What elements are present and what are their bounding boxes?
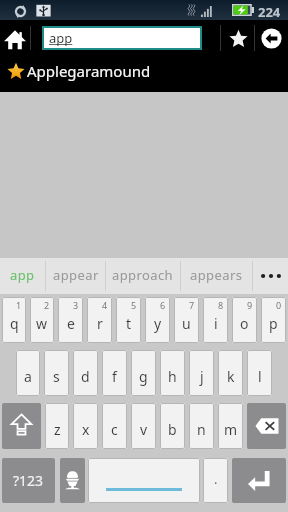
staticText: m [224,420,238,439]
staticText: 7 [189,299,195,311]
button[interactable]: 0 [261,297,286,343]
button[interactable]: s [44,350,69,396]
button[interactable]: More suggestions [253,258,288,294]
staticText: e [67,314,75,333]
button[interactable]: Bookmarks [222,20,254,56]
staticText: app [10,266,35,284]
staticText: x [82,420,90,439]
button[interactable]: Space [88,458,200,503]
staticText: l [258,367,262,386]
button[interactable]: Applegaramound [0,56,288,92]
button[interactable]: Home [0,20,30,56]
button[interactable]: l [247,350,272,396]
staticText: 224 [258,3,281,21]
button[interactable]: 5 [116,297,141,343]
button[interactable]: appears [181,258,252,294]
button[interactable]: d [73,350,98,396]
staticText: u [182,314,191,333]
button[interactable]: app [42,26,202,50]
staticText: c [111,420,118,439]
button[interactable]: g [131,350,156,396]
staticText: 4 [102,299,108,311]
staticText: p [269,314,278,333]
button[interactable]: 3 [58,297,83,343]
staticText: s [53,367,60,386]
staticText: 1 [16,299,22,311]
staticText: r [97,314,103,333]
button[interactable]: 9 [232,297,257,343]
staticText: y [154,314,162,333]
staticText: 9 [247,299,253,311]
staticText: Applegaramound [27,61,151,81]
staticText: appear [53,266,99,284]
button[interactable]: approach [106,258,180,294]
staticText: j [200,367,204,386]
button[interactable]: . [203,458,228,503]
staticText: n [197,420,206,439]
button[interactable]: Delete [247,403,286,449]
staticText: 6 [160,299,166,311]
staticText: w [36,314,48,333]
staticText: t [126,314,132,333]
staticText: h [168,367,177,386]
staticText: ?123 [13,471,44,490]
staticText: a [24,367,32,386]
staticText: b [168,420,177,439]
staticText: 5 [131,299,137,311]
staticText: i [214,314,218,333]
staticText: q [10,314,19,333]
button[interactable]: ?123 [2,458,55,503]
button[interactable]: appear [46,258,105,294]
button[interactable]: Voice input [60,458,85,503]
staticText: f [112,367,117,386]
button[interactable]: j [189,350,214,396]
button[interactable]: 8 [203,297,228,343]
staticText: g [139,367,148,386]
staticText: 0 [276,299,282,311]
button[interactable]: 6 [145,297,170,343]
staticText: k [227,367,235,386]
button[interactable]: 4 [87,297,112,343]
staticText: . [214,470,218,488]
button[interactable]: m [218,403,243,449]
staticText: v [140,420,148,439]
button[interactable]: z [45,403,69,449]
button[interactable]: Back [256,20,287,56]
button[interactable]: Enter [232,458,286,503]
staticText: approach [112,266,174,284]
staticText: d [81,367,90,386]
button[interactable]: c [102,403,127,449]
button[interactable]: k [218,350,243,396]
button[interactable]: 1 [2,297,26,343]
button[interactable]: v [131,403,156,449]
button[interactable]: h [160,350,185,396]
button[interactable]: b [160,403,185,449]
button[interactable]: f [102,350,127,396]
button[interactable]: a [16,350,40,396]
button[interactable]: n [189,403,214,449]
button[interactable]: Shift [2,403,41,449]
button[interactable]: app [0,258,45,294]
staticText: app [49,29,73,47]
staticText: appears [190,266,243,284]
staticText: z [54,420,61,439]
staticText: 8 [218,299,224,311]
button[interactable]: x [73,403,98,449]
staticText: 2 [44,299,50,311]
button[interactable]: 7 [174,297,199,343]
staticText: o [240,314,249,333]
button[interactable]: 2 [30,297,54,343]
staticText: 3 [73,299,79,311]
